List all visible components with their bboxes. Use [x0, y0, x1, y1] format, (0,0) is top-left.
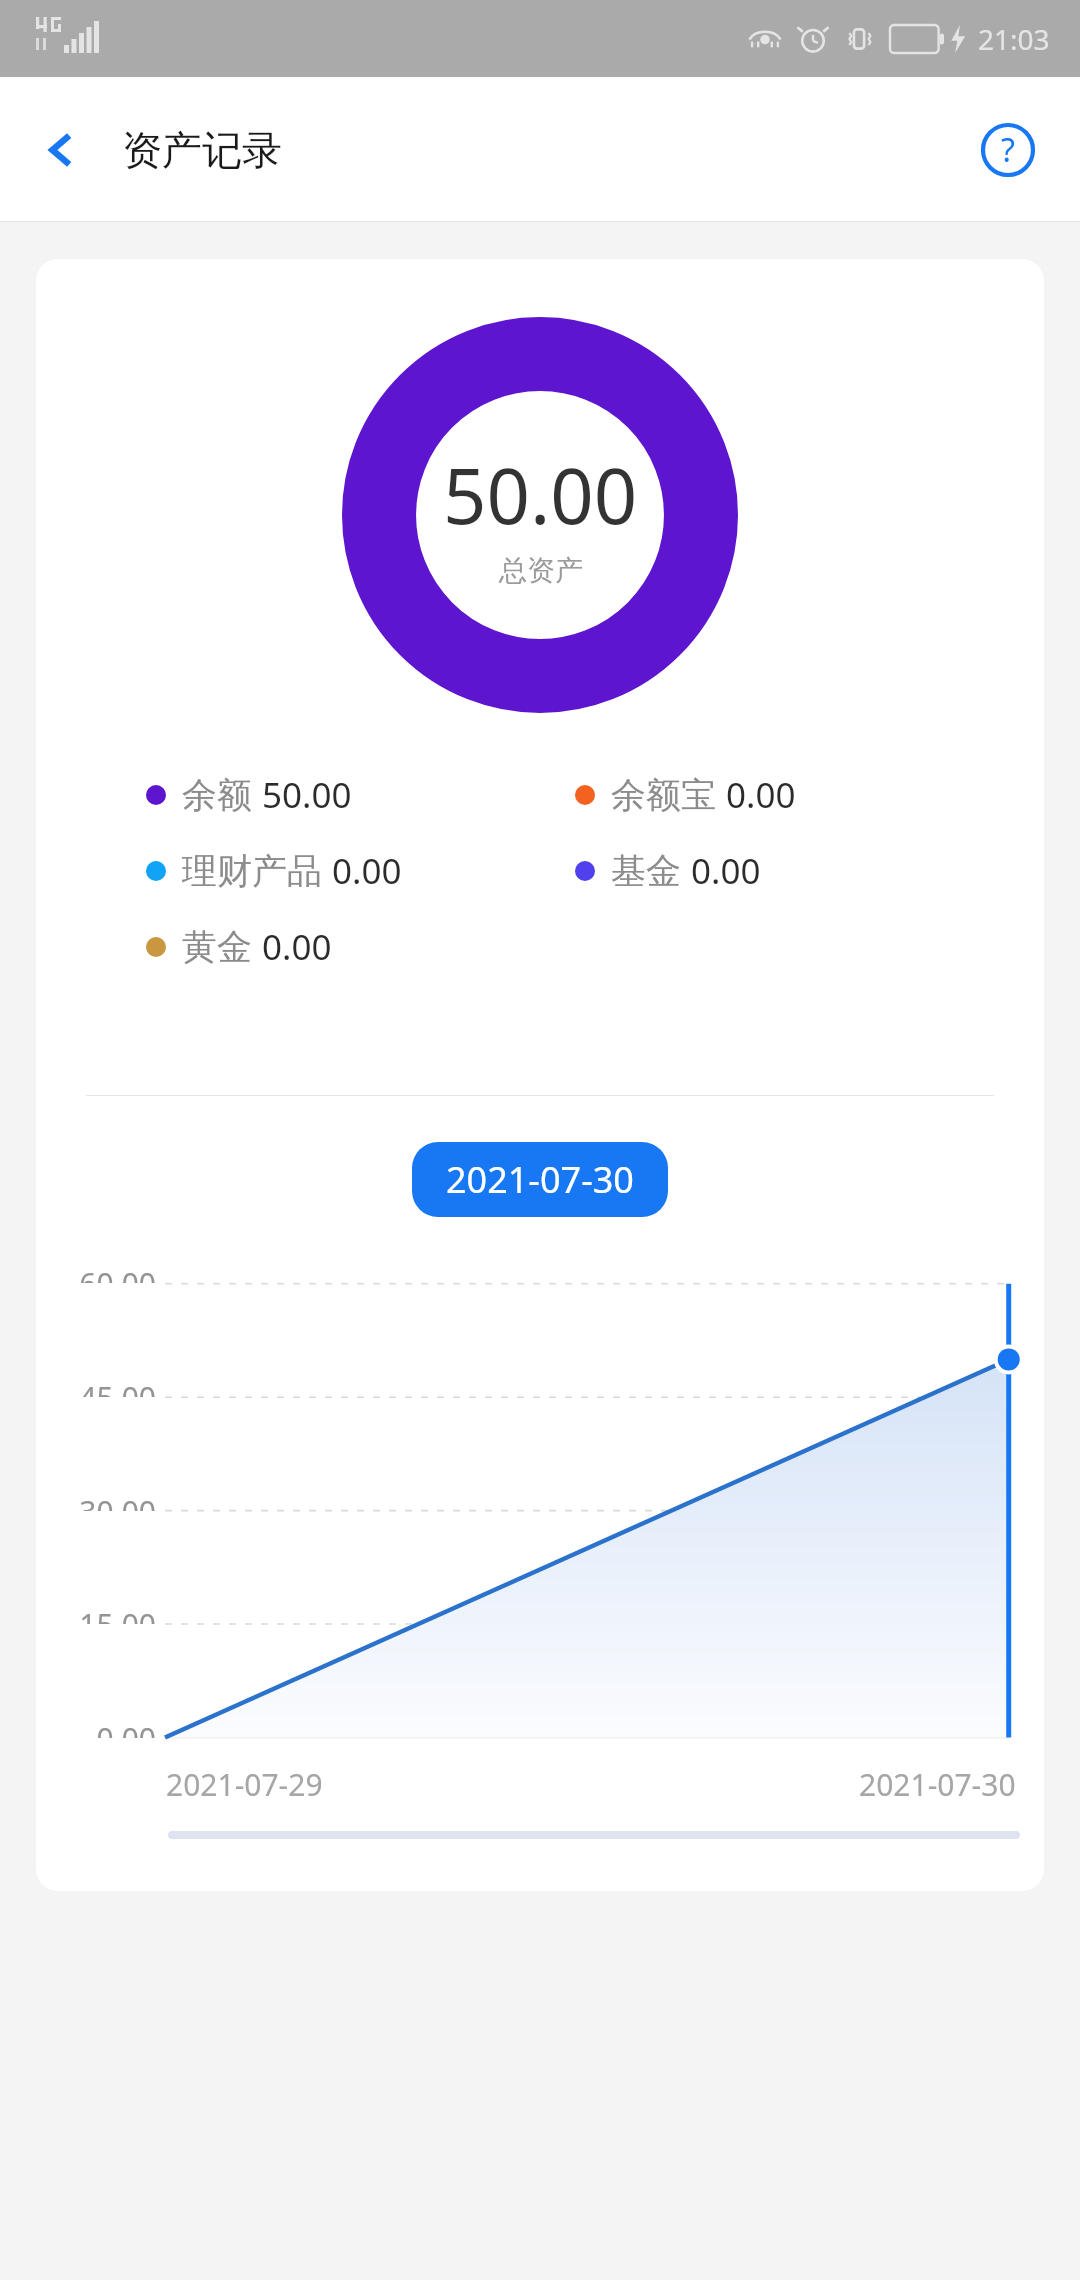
staticText: 50.00 [262, 771, 352, 819]
staticText: 2021-07-29 [166, 1764, 323, 1805]
button[interactable]: Back [20, 108, 104, 192]
staticText: 黄金 [182, 925, 252, 969]
staticText: ? [1001, 128, 1015, 172]
staticText: 50.00 [443, 443, 638, 547]
staticText: 45.00 [79, 1377, 156, 1397]
staticText: 基金 [611, 849, 681, 893]
staticText: 余额宝 [611, 773, 716, 817]
button[interactable]: Help [966, 108, 1050, 192]
staticText: 30.00 [79, 1491, 156, 1511]
staticText: 21:03 [978, 20, 1050, 58]
button[interactable]: 2021-07-30 [412, 1142, 668, 1217]
staticText: 总资产 [499, 553, 583, 588]
staticText: 余额 [182, 773, 252, 817]
staticText: 15.00 [79, 1604, 156, 1624]
staticText: 2021-07-30 [446, 1155, 634, 1204]
staticText: 0.00 [96, 1718, 156, 1738]
staticText: 0.00 [262, 923, 332, 971]
staticText: 0.00 [726, 771, 796, 819]
staticText: 理财产品 [182, 849, 322, 893]
staticText: 0.00 [332, 847, 402, 895]
staticText: 60.00 [79, 1263, 156, 1283]
staticText: 0.00 [691, 847, 761, 895]
staticText: 资产记录 [122, 125, 282, 175]
staticText: 2021-07-30 [859, 1764, 1016, 1805]
